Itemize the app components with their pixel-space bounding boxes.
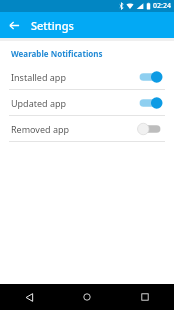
button[interactable]: Updated app	[0, 90, 174, 115]
staticText: Installed app	[11, 71, 137, 83]
button[interactable]: Off	[137, 121, 163, 137]
staticText: Wearable Notifications	[11, 48, 103, 59]
button[interactable]: Home	[58, 284, 116, 310]
button[interactable]: On	[137, 69, 163, 85]
staticText: Updated app	[11, 97, 137, 109]
staticText: Settings	[31, 18, 74, 33]
button[interactable]: Back	[0, 284, 58, 310]
button[interactable]: Installed app	[0, 64, 174, 89]
staticText: Removed app	[11, 123, 137, 135]
button[interactable]: Recent apps	[116, 284, 174, 310]
button[interactable]: Removed app	[0, 116, 174, 141]
button[interactable]: Back	[4, 15, 24, 35]
staticText: 02:24	[153, 1, 171, 11]
button[interactable]: On	[137, 95, 163, 111]
